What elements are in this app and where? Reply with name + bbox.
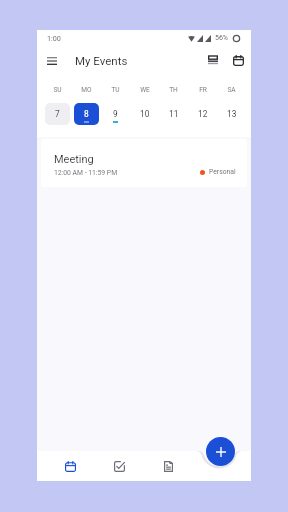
staticText: 8 bbox=[84, 109, 89, 119]
button[interactable]: Calendar bbox=[59, 455, 81, 477]
button[interactable]: Calendar view bbox=[227, 49, 249, 71]
staticText: 7 bbox=[55, 109, 60, 119]
staticText: 12 bbox=[198, 109, 208, 119]
staticText: Personal bbox=[209, 168, 236, 176]
staticText: 9 bbox=[113, 109, 118, 119]
staticText: 12:00 AM - 11:59 PM bbox=[54, 169, 118, 177]
staticText: Meeting bbox=[54, 153, 94, 166]
staticText: SA bbox=[227, 86, 236, 94]
button[interactable]: Agenda view bbox=[202, 49, 224, 71]
staticText: My Events bbox=[75, 54, 128, 67]
staticText: 10 bbox=[140, 109, 150, 119]
staticText: 1:00 bbox=[47, 34, 61, 42]
button[interactable]: 9 bbox=[103, 103, 128, 125]
button[interactable]: 10 bbox=[132, 103, 157, 125]
button[interactable]: Tasks bbox=[108, 455, 130, 477]
button[interactable]: 12 bbox=[190, 103, 215, 125]
staticText: SU bbox=[53, 86, 62, 94]
button[interactable]: Menu bbox=[41, 49, 63, 71]
staticText: 11 bbox=[169, 109, 179, 119]
button[interactable]: Meeting bbox=[41, 139, 247, 187]
button[interactable]: Notes bbox=[157, 455, 179, 477]
button[interactable]: 13 bbox=[219, 103, 244, 125]
button[interactable]: 11 bbox=[161, 103, 186, 125]
staticText: FR bbox=[199, 86, 207, 94]
staticText: WE bbox=[140, 86, 150, 94]
staticText: TH bbox=[169, 86, 178, 94]
staticText: MO bbox=[81, 86, 92, 94]
button[interactable]: Add event bbox=[206, 437, 235, 466]
staticText: 13 bbox=[227, 109, 237, 119]
button[interactable]: 7 bbox=[45, 103, 70, 125]
button[interactable]: 8 bbox=[74, 103, 99, 125]
staticText: TU bbox=[111, 86, 120, 94]
staticText: 56% bbox=[215, 34, 228, 42]
